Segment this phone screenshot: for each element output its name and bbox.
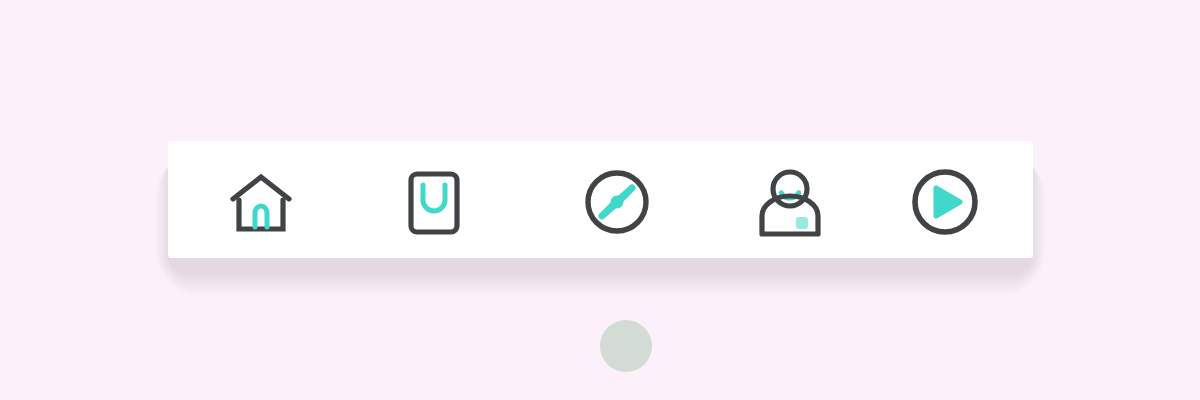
button[interactable]: Explore [514, 141, 687, 258]
button[interactable]: Play [860, 141, 1033, 258]
button[interactable]: Shopping bag [341, 141, 514, 258]
button[interactable]: Home indicator [600, 320, 652, 372]
button[interactable]: Home [168, 141, 341, 258]
button[interactable]: Profile [687, 141, 860, 258]
